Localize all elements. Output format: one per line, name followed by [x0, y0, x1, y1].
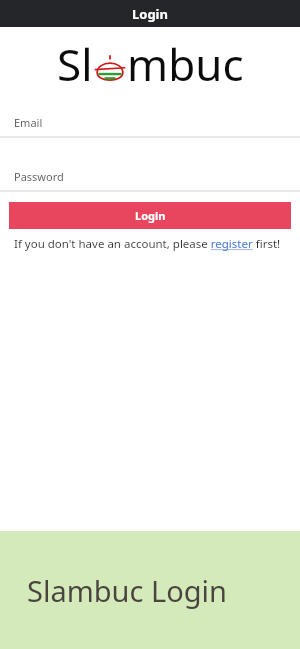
staticText: Slambuc Login — [27, 571, 227, 610]
staticText: If you don't have an account, please reg… — [14, 236, 281, 252]
button[interactable]: Email — [0, 114, 300, 131]
staticText: Login — [135, 208, 166, 223]
button[interactable]: Password — [0, 168, 300, 185]
staticText: Sl — [57, 34, 93, 94]
button[interactable]: Login — [9, 202, 291, 229]
staticText: Email — [14, 115, 43, 130]
button[interactable]: If you don't have an account, please reg… — [14, 236, 286, 252]
staticText: mbuc — [127, 34, 244, 94]
staticText: Login — [132, 5, 168, 23]
staticText: Password — [14, 169, 64, 184]
other: Slambuc logo — [94, 53, 126, 85]
